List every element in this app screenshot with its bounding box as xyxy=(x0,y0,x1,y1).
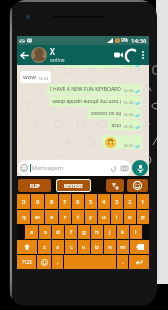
staticText: 14:33 xyxy=(38,76,49,81)
button[interactable]: its so cooooc xyxy=(90,110,140,117)
staticText: x xyxy=(56,243,60,251)
button[interactable]: v xyxy=(78,240,90,254)
staticText: j xyxy=(109,228,111,236)
staticText: o xyxy=(128,213,132,221)
button[interactable]: More options xyxy=(138,50,148,60)
button[interactable]: 7 xyxy=(59,194,71,209)
button[interactable]: 9 xyxy=(31,194,44,209)
button[interactable]: Text style xyxy=(106,179,124,192)
button[interactable]: . xyxy=(117,255,128,269)
button[interactable]: m xyxy=(117,240,129,254)
button[interactable]: t xyxy=(72,210,84,224)
staticText: 0 xyxy=(22,198,26,206)
staticText: g xyxy=(82,228,86,236)
button[interactable]: FLIP xyxy=(18,179,51,192)
staticText: 14:33 xyxy=(123,65,134,67)
button[interactable]: p xyxy=(137,210,149,224)
staticText: I HAVE A NEW FUN KEYBOARD xyxy=(50,86,121,93)
button[interactable]: 4 xyxy=(98,194,110,209)
staticText: p xyxy=(141,213,145,221)
button[interactable]: Record voice message xyxy=(132,160,148,176)
button[interactable]: 5 xyxy=(85,194,97,209)
button[interactable]: a xyxy=(25,225,38,239)
button[interactable]: y xyxy=(85,210,97,224)
staticText: 6 xyxy=(76,198,80,206)
staticText: s xyxy=(44,228,47,236)
button[interactable]: u xyxy=(98,210,110,224)
button[interactable]: I HAVE A NEW FUN KEYBOARD xyxy=(50,86,140,93)
button[interactable]: 14:35 xyxy=(105,137,140,148)
staticText: 5 xyxy=(89,198,93,206)
staticText: nice xyxy=(111,122,121,129)
staticText: n xyxy=(108,243,112,251)
staticText: 14:35 xyxy=(123,124,134,129)
staticText: FLIP xyxy=(30,183,40,189)
button[interactable]: Back xyxy=(18,49,31,62)
staticText: c xyxy=(70,243,73,251)
button[interactable]: Emoji keyboard xyxy=(37,255,51,269)
button[interactable]: k xyxy=(117,225,129,239)
button[interactable]: i xyxy=(111,210,123,224)
button[interactable]: i turn my phone upside down xyxy=(52,98,140,105)
button[interactable]: x xyxy=(52,240,64,254)
staticText: v xyxy=(82,243,86,251)
staticText: X xyxy=(50,46,55,57)
button[interactable]: o xyxy=(124,210,136,224)
button[interactable]: l xyxy=(130,225,142,239)
staticText: 14:34 xyxy=(123,100,134,105)
staticText: 9% xyxy=(121,37,129,44)
button[interactable]: r xyxy=(59,210,71,224)
button[interactable]: n xyxy=(104,240,116,254)
staticText: q xyxy=(22,213,26,221)
button[interactable]: ?123 xyxy=(17,255,36,269)
button[interactable]: REVERSE xyxy=(57,180,90,191)
staticText: y xyxy=(89,213,93,221)
staticText: Mensagem xyxy=(32,164,64,172)
button[interactable]: s xyxy=(39,225,51,239)
button[interactable]: q xyxy=(17,210,30,224)
button[interactable]: 0 xyxy=(17,194,30,209)
staticText: wow xyxy=(23,73,36,81)
button[interactable]: g xyxy=(78,225,90,239)
button[interactable]: j xyxy=(104,225,116,239)
button[interactable]: 3 xyxy=(111,194,123,209)
button[interactable]: Emoji xyxy=(20,164,28,172)
staticText: ?123 xyxy=(22,259,32,265)
button[interactable]: Backspace xyxy=(130,240,149,254)
button[interactable]: nice xyxy=(111,122,140,129)
staticText: 14:36 xyxy=(131,37,147,45)
button[interactable]: Video call xyxy=(111,48,125,62)
button[interactable]: d xyxy=(52,225,64,239)
button[interactable]: 6 xyxy=(72,194,84,209)
button[interactable]: wow xyxy=(23,73,49,81)
button[interactable]: z xyxy=(38,240,51,254)
button[interactable]: 1 xyxy=(137,194,149,209)
button[interactable]: Call xyxy=(125,49,138,62)
button[interactable]: Attach xyxy=(109,164,118,173)
button[interactable]: 2 xyxy=(124,194,136,209)
button[interactable]: , xyxy=(52,255,63,269)
staticText: 1 xyxy=(141,198,145,206)
button[interactable]: f xyxy=(65,225,77,239)
staticText: 14:34 xyxy=(123,88,134,93)
staticText: 8 xyxy=(50,198,54,206)
button[interactable]: h xyxy=(91,225,103,239)
button[interactable]: e xyxy=(45,210,58,224)
staticText: 14:35 xyxy=(123,143,134,148)
staticText: 9 xyxy=(36,198,40,206)
button[interactable]: 8 xyxy=(45,194,58,209)
staticText: 2 xyxy=(128,198,132,206)
staticText: its so cooooc xyxy=(90,110,121,117)
button[interactable]: Camera xyxy=(120,164,129,173)
button[interactable]: Shift xyxy=(17,240,37,254)
staticText: m xyxy=(120,243,126,251)
button[interactable]: b xyxy=(91,240,103,254)
staticText: i turn my phone upside down xyxy=(52,98,121,105)
button[interactable]: c xyxy=(65,240,77,254)
button[interactable]: Emoji xyxy=(20,160,129,176)
button[interactable]: Emoji xyxy=(127,179,148,192)
button[interactable]: w xyxy=(31,210,44,224)
button[interactable]: 14:33 xyxy=(64,65,142,68)
button[interactable]: Enter xyxy=(129,255,149,269)
